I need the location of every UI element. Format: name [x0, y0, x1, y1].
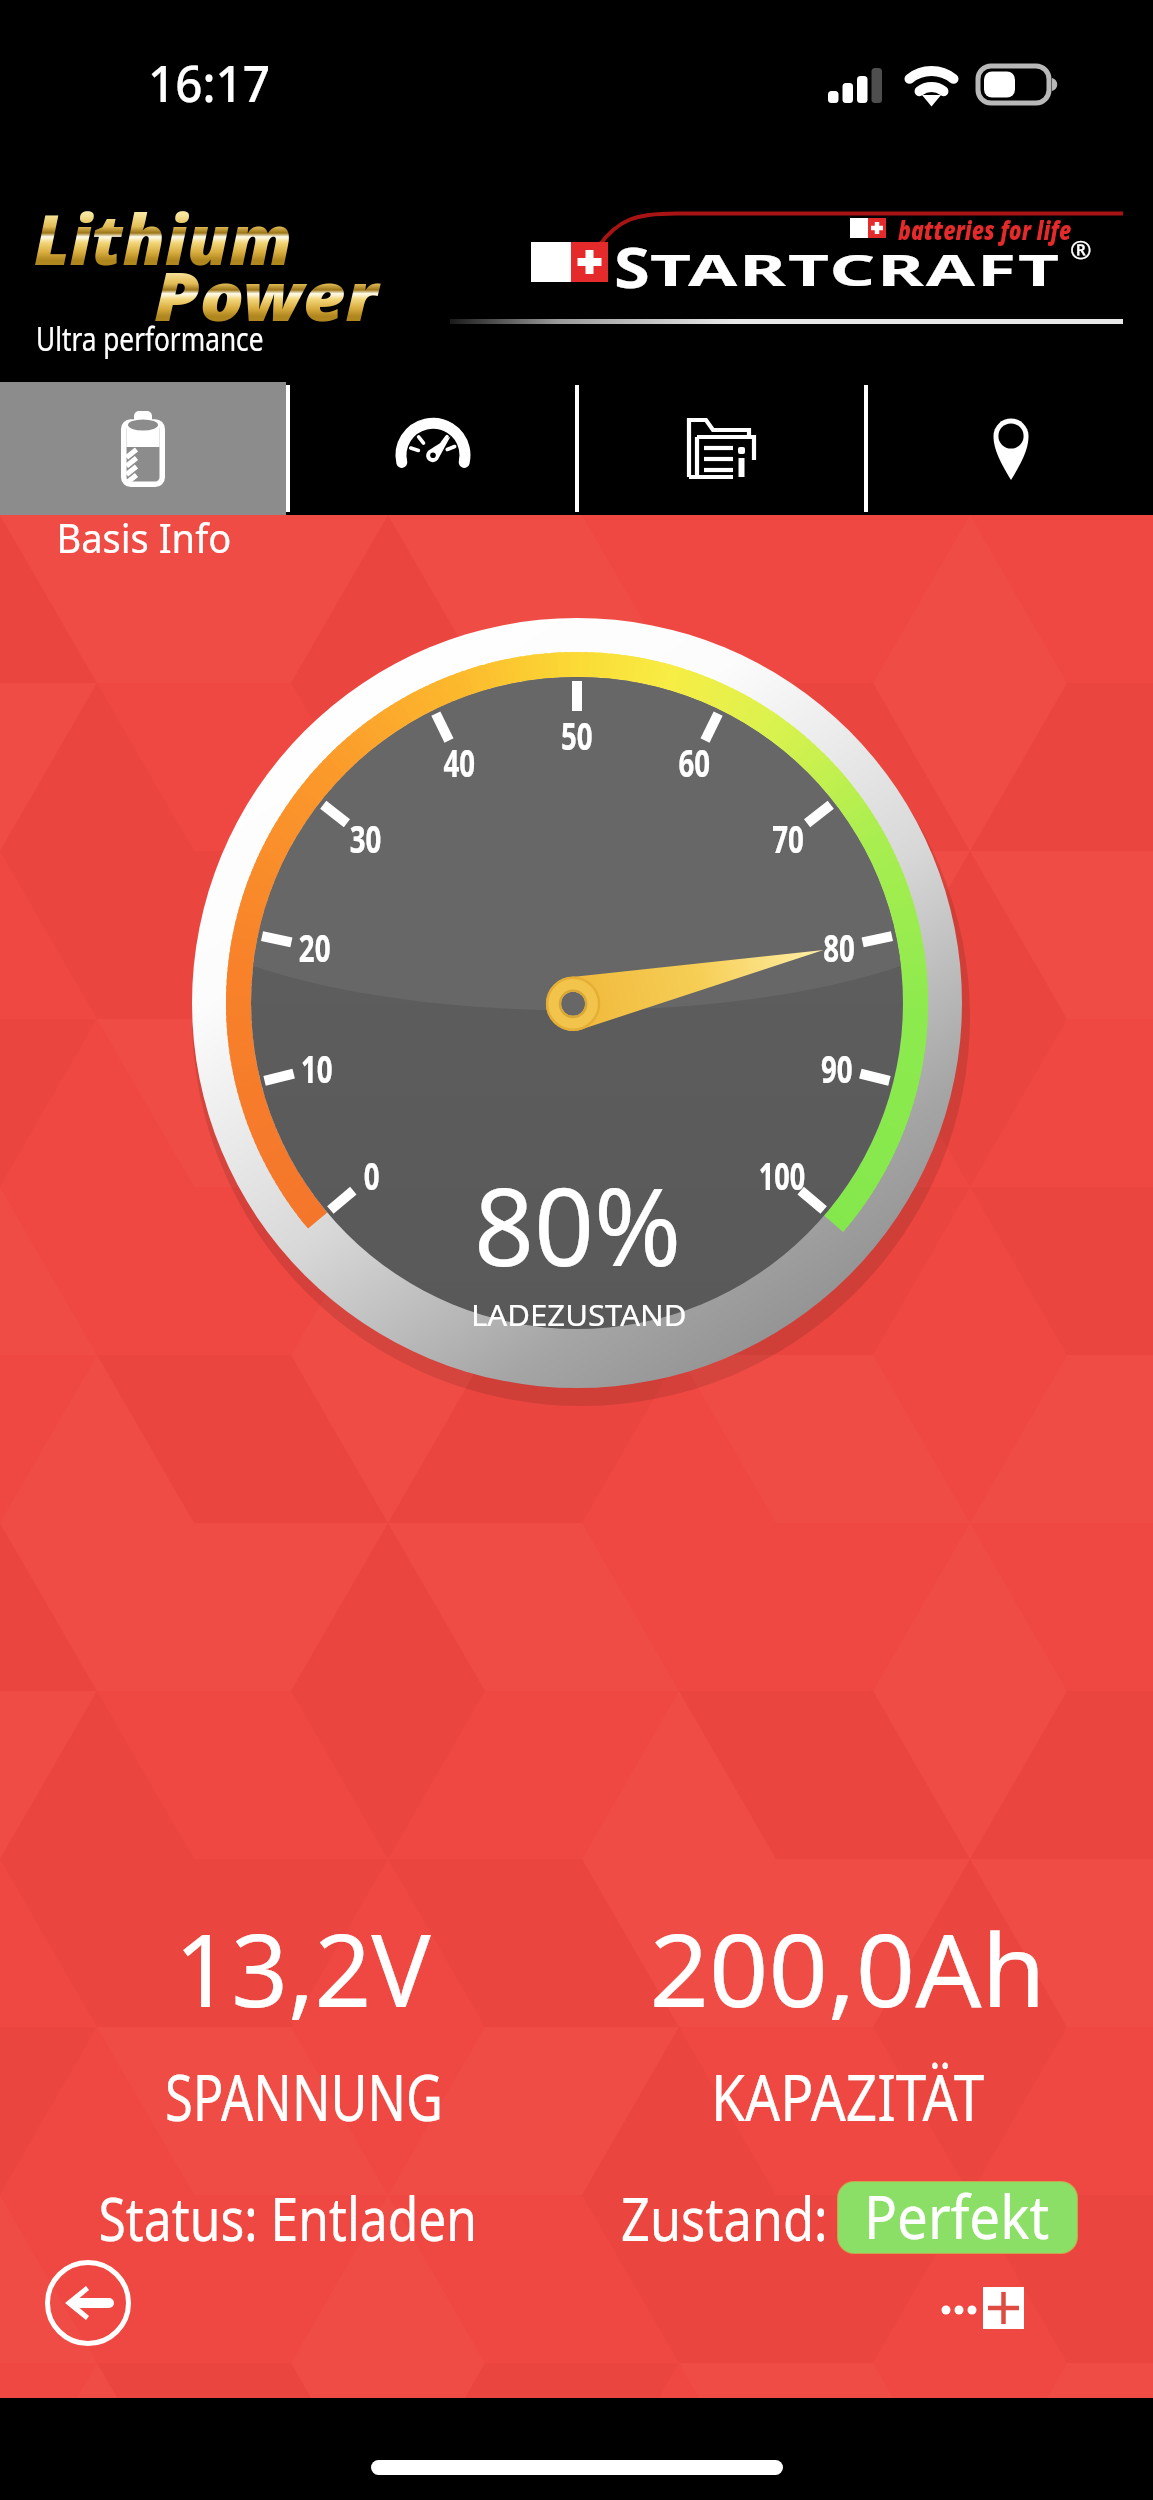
- button[interactable]: Performance: [290, 382, 575, 515]
- button[interactable]: Zustand: Perfekt: [838, 2182, 1077, 2253]
- button[interactable]: Location: [868, 382, 1153, 515]
- button[interactable]: More options: [930, 2280, 986, 2338]
- button[interactable]: Basis Info: [0, 382, 286, 515]
- button[interactable]: Documents: [579, 382, 864, 515]
- button[interactable]: Back: [43, 2258, 133, 2348]
- button[interactable]: Add: [980, 2284, 1028, 2332]
